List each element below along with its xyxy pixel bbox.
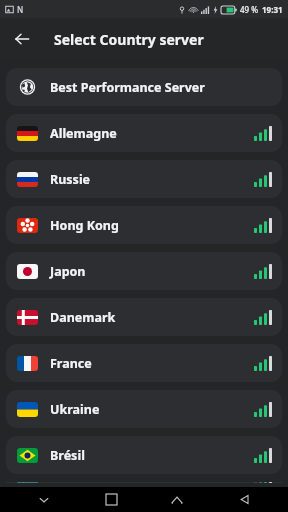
- button[interactable]: Allemagne: [6, 114, 282, 152]
- button[interactable]: Home: [155, 487, 199, 512]
- staticText: Danemark: [50, 309, 254, 326]
- button[interactable]: Back: [222, 487, 266, 512]
- button[interactable]: Brésil: [6, 436, 282, 474]
- staticText: 19:31: [262, 4, 283, 15]
- staticText: Brésil: [50, 447, 254, 464]
- button[interactable]: Best Performance Server: [6, 68, 282, 106]
- button[interactable]: Recent apps: [89, 487, 133, 512]
- staticText: Select Country server: [54, 30, 204, 49]
- staticText: Allemagne: [50, 125, 254, 142]
- button[interactable]: Russie: [6, 160, 282, 198]
- button[interactable]: France: [6, 344, 282, 382]
- button[interactable]: Danemark: [6, 298, 282, 336]
- staticText: Russie: [50, 171, 254, 188]
- button[interactable]: Back: [8, 25, 36, 53]
- staticText: Best Performance Server: [50, 79, 272, 96]
- staticText: France: [50, 355, 254, 372]
- staticText: Japon: [50, 263, 254, 280]
- button[interactable]: Suède: [6, 482, 282, 483]
- staticText: 49 %: [240, 4, 259, 15]
- staticText: Hong Kong: [50, 217, 254, 234]
- staticText: N: [17, 4, 24, 15]
- button[interactable]: Hong Kong: [6, 206, 282, 244]
- button[interactable]: Hide keyboard: [22, 487, 66, 512]
- button[interactable]: Japon: [6, 252, 282, 290]
- staticText: Ukraine: [50, 401, 254, 418]
- button[interactable]: Ukraine: [6, 390, 282, 428]
